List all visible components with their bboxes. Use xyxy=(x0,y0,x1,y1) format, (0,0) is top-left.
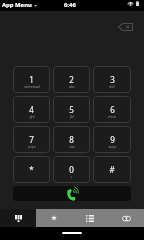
button[interactable]: 9 xyxy=(93,126,131,153)
button[interactable]: 2 xyxy=(53,66,90,93)
staticText: wxyz xyxy=(108,144,117,149)
staticText: jkl xyxy=(70,114,74,119)
staticText: # xyxy=(109,164,115,175)
staticText: voicemail xyxy=(24,84,40,89)
button[interactable]: 7 xyxy=(13,126,50,153)
button[interactable]: 0 xyxy=(53,156,90,183)
staticText: 6 xyxy=(110,104,115,115)
staticText: 2 xyxy=(69,74,74,85)
button[interactable]: 6 xyxy=(93,96,131,123)
button[interactable]: Backspace xyxy=(117,20,133,34)
staticText: abc xyxy=(69,84,75,89)
staticText: * xyxy=(29,164,34,175)
staticText: App Menu xyxy=(2,1,32,9)
button[interactable]: * xyxy=(13,156,50,183)
staticText: 0 xyxy=(69,164,74,175)
button[interactable]: 4 xyxy=(13,96,50,123)
staticText: pqrs xyxy=(28,144,36,149)
button[interactable]: Call xyxy=(13,186,131,201)
staticText: 7 xyxy=(29,134,34,145)
button[interactable]: 5 xyxy=(53,96,90,123)
button[interactable]: 8 xyxy=(53,126,90,153)
button[interactable]: # xyxy=(93,156,131,183)
staticText: 6:46 xyxy=(64,1,76,9)
button[interactable]: 3 xyxy=(93,66,131,93)
staticText: mno xyxy=(108,114,116,119)
staticText: 9 xyxy=(110,134,115,145)
button[interactable]: Keypad xyxy=(0,209,36,227)
button[interactable]: Voicemail xyxy=(108,209,144,227)
staticText: 5 xyxy=(69,104,74,115)
staticText: 1 xyxy=(29,74,34,85)
staticText: tuv xyxy=(69,144,75,149)
staticText: 4 xyxy=(29,104,34,115)
staticText: ghi xyxy=(29,114,35,119)
button[interactable]: Favorites xyxy=(36,209,72,227)
staticText: + xyxy=(70,174,73,179)
staticText: 3 xyxy=(110,74,115,85)
staticText: def xyxy=(109,84,115,89)
button[interactable]: 1 xyxy=(13,66,50,93)
button[interactable]: Recents xyxy=(72,209,108,227)
staticText: 8 xyxy=(69,134,74,145)
